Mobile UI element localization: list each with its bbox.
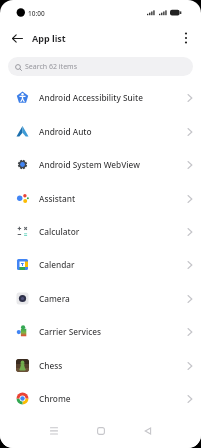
staticText: Carrier Services	[39, 326, 187, 337]
button[interactable]: Assistant	[0, 182, 201, 215]
button[interactable]: Carrier Services	[0, 315, 201, 348]
button[interactable]: Camera	[0, 282, 201, 315]
staticText: Android System WebView	[39, 159, 187, 170]
staticText: 10:00	[28, 9, 45, 18]
button[interactable]	[8, 29, 26, 47]
staticText: Android Accessibility Suite	[39, 92, 187, 103]
staticText: Search 62 items	[25, 62, 77, 72]
button[interactable]	[179, 31, 193, 45]
staticText: Calculator	[39, 226, 187, 237]
staticText: App list	[32, 32, 66, 44]
staticText: Chrome	[39, 393, 187, 404]
button[interactable]	[131, 414, 165, 448]
button[interactable]	[37, 414, 71, 448]
button[interactable]: Chess	[0, 349, 201, 382]
button[interactable]: Calculator	[0, 215, 201, 248]
staticText: Android Auto	[39, 126, 187, 137]
button[interactable]: Android System WebView	[0, 148, 201, 181]
staticText: Assistant	[39, 193, 187, 204]
button[interactable]: Chrome	[0, 382, 201, 415]
button[interactable]: Calendar	[0, 248, 201, 281]
staticText: Camera	[39, 293, 187, 304]
button[interactable]: Android Auto	[0, 115, 201, 148]
button[interactable]: Search 62 items	[8, 57, 193, 76]
staticText: Chess	[39, 360, 187, 371]
button[interactable]	[84, 414, 118, 448]
button[interactable]: Android Accessibility Suite	[0, 81, 201, 114]
staticText: Calendar	[39, 259, 187, 270]
